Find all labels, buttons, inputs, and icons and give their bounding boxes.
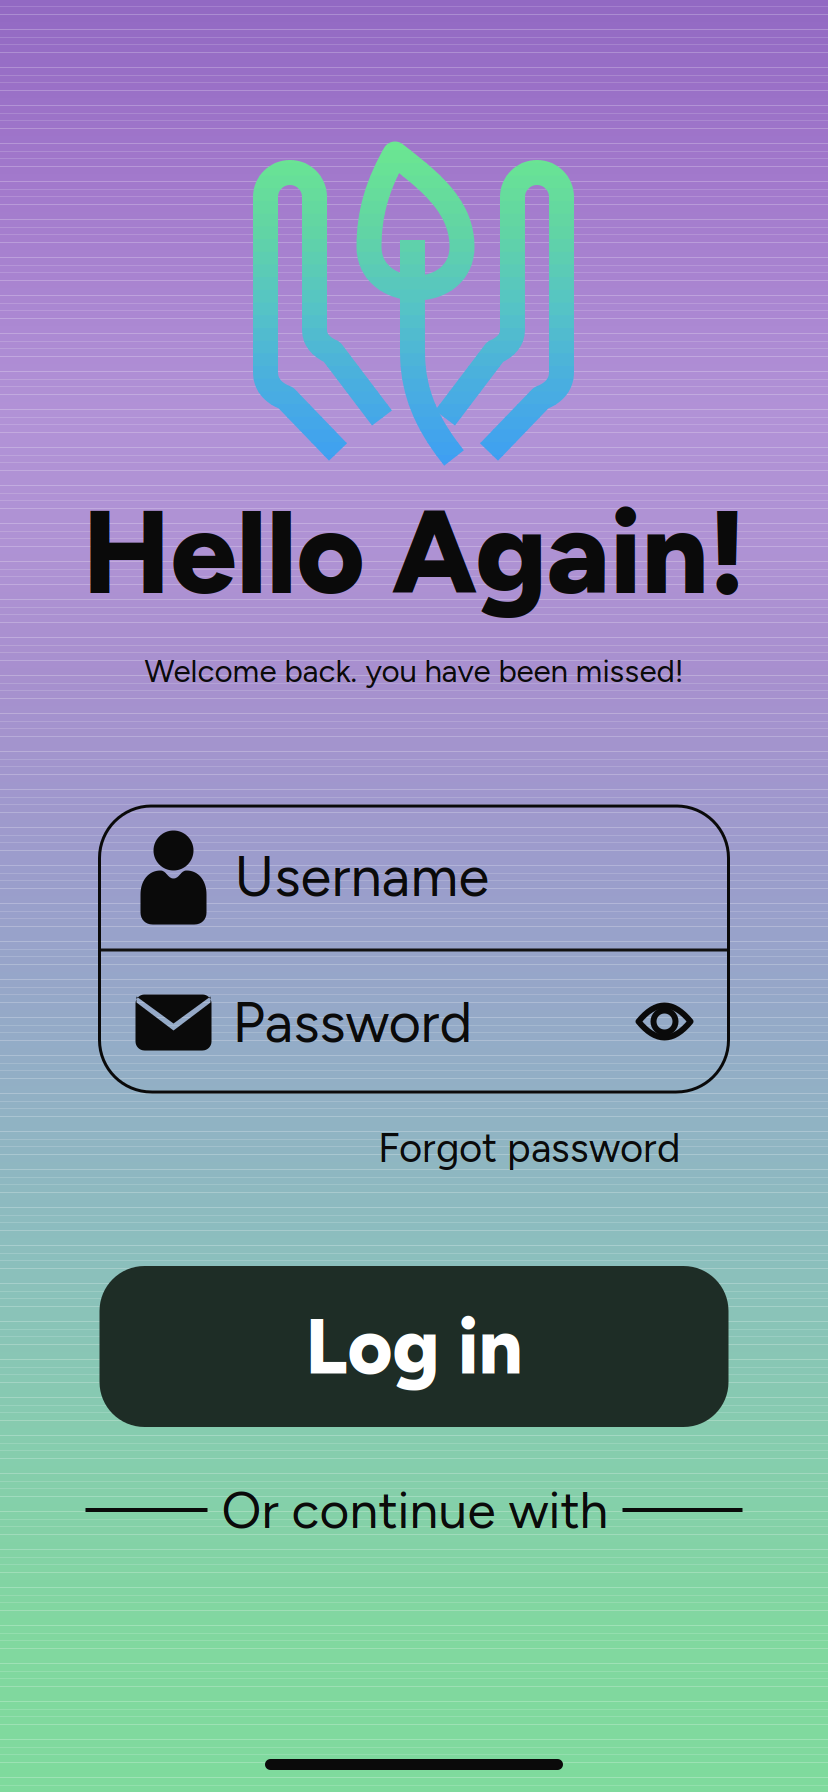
staticText: Hello Again! <box>82 482 745 622</box>
staticText: Log in <box>305 1300 522 1393</box>
button[interactable]: Password <box>99 951 728 1093</box>
staticText: Password <box>232 989 472 1056</box>
button[interactable]: Forgot password <box>378 1124 680 1172</box>
staticText: Or continue with <box>221 1479 608 1541</box>
staticText: Welcome back. you have been missed! <box>144 652 683 690</box>
button[interactable]: Log in <box>99 1266 728 1427</box>
staticText: Forgot password <box>378 1124 680 1172</box>
staticText: Username <box>234 843 489 910</box>
button[interactable]: Username <box>99 804 728 948</box>
